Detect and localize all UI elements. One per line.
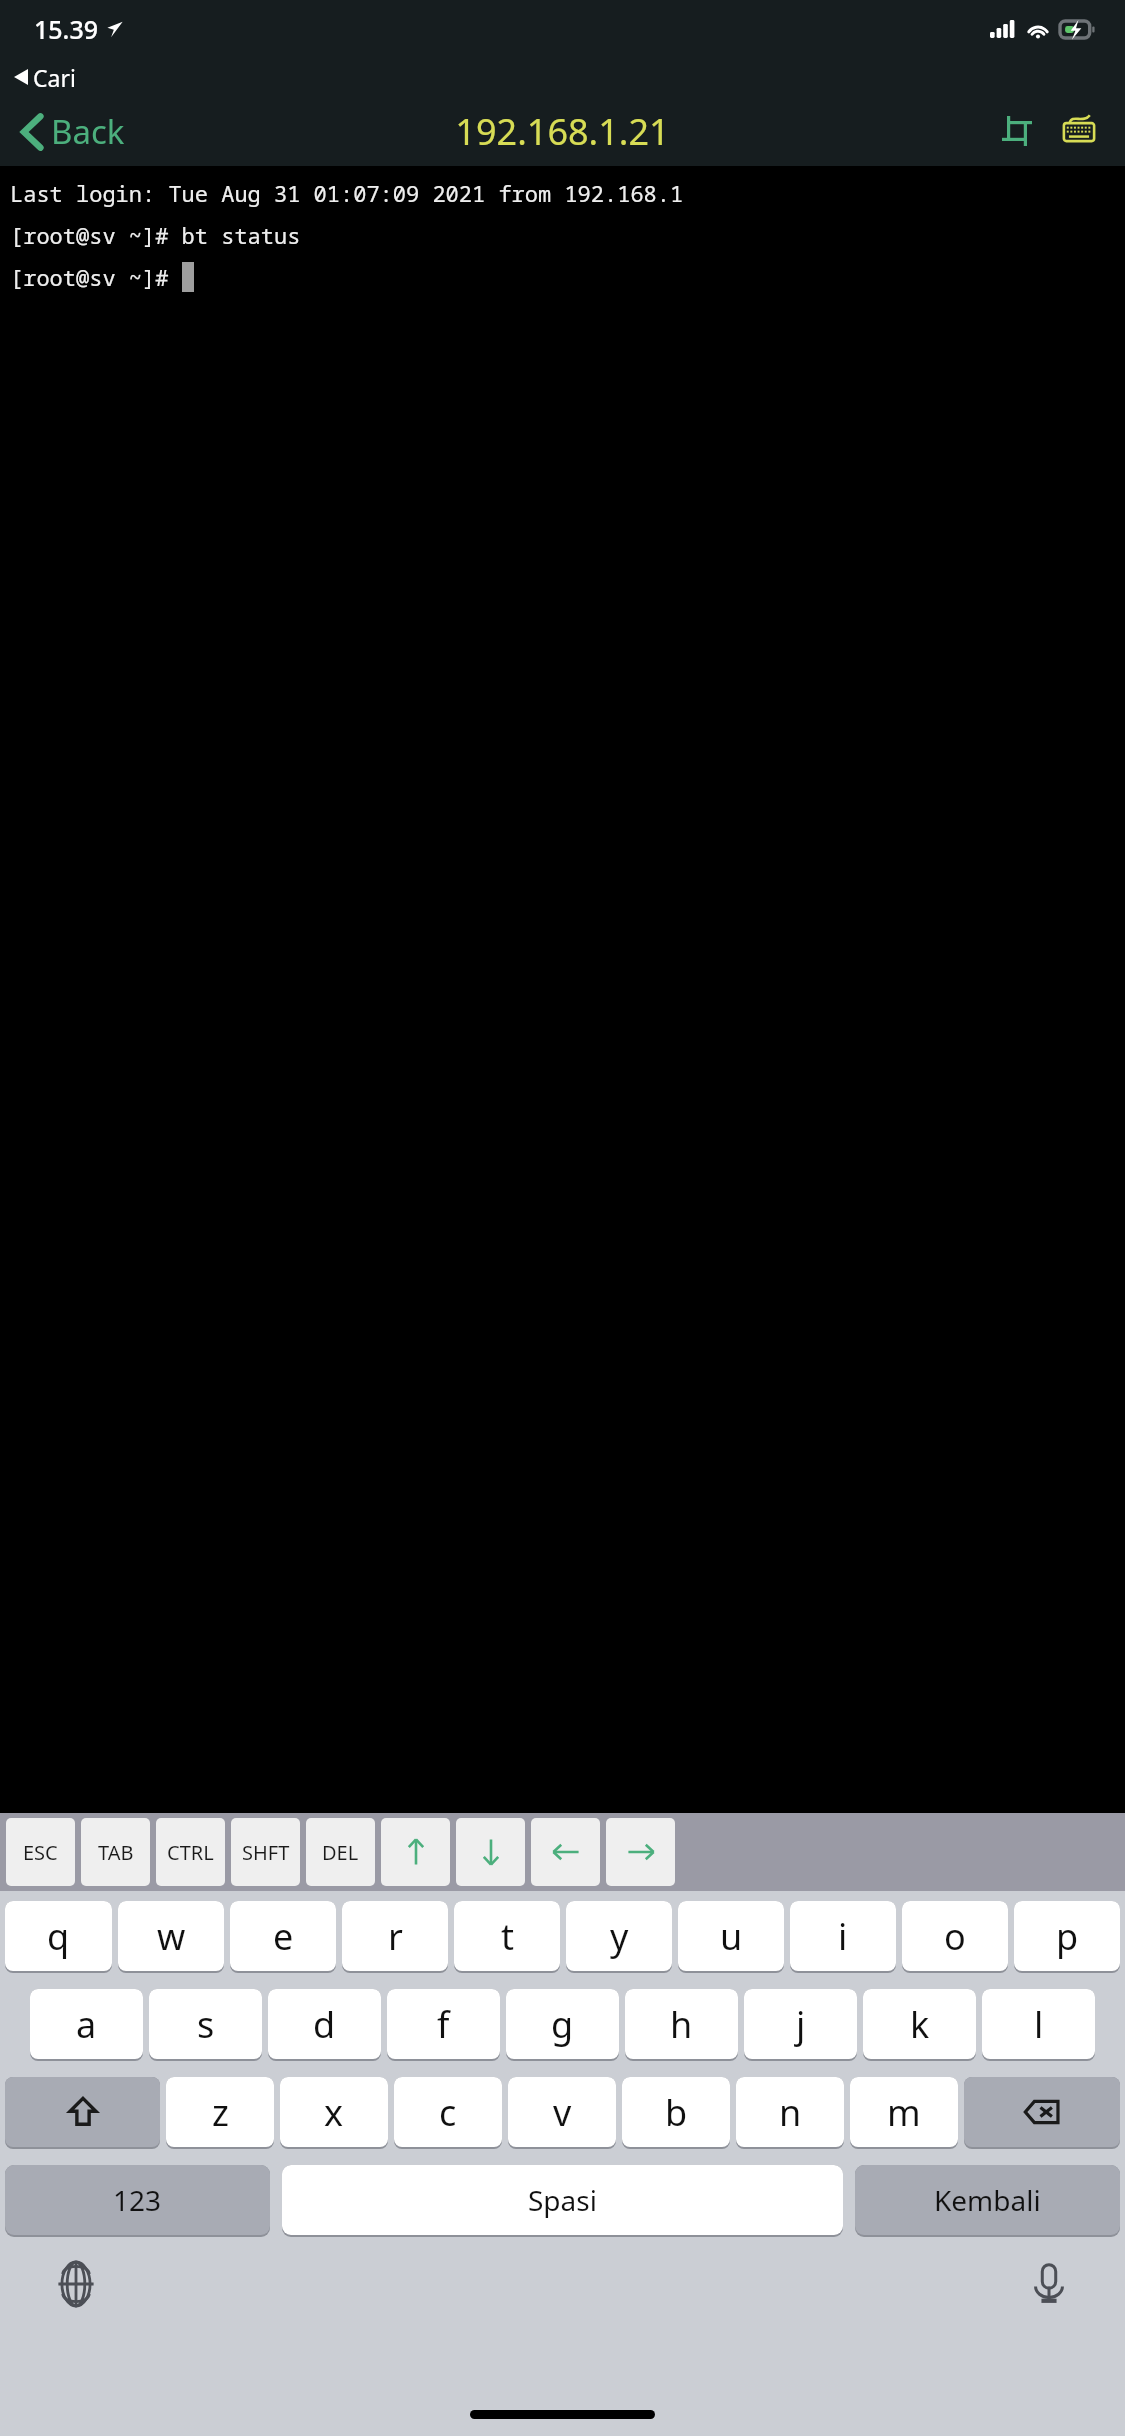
button[interactable]: c (394, 2077, 502, 2147)
button[interactable]: DEL (306, 1818, 375, 1886)
button[interactable]: b (622, 2077, 730, 2147)
button[interactable]: g (506, 1989, 619, 2059)
button[interactable]: Arrow up (381, 1818, 450, 1886)
button[interactable]: Shift (5, 2077, 160, 2147)
staticText: q (47, 1912, 70, 1961)
staticText: ESC (23, 1839, 58, 1866)
button[interactable]: n (736, 2077, 844, 2147)
button[interactable]: f (387, 1989, 500, 2059)
button[interactable]: q (5, 1901, 112, 1971)
staticText: DEL (322, 1839, 359, 1866)
staticText: TAB (98, 1839, 134, 1866)
button[interactable]: t (454, 1901, 560, 1971)
button[interactable]: Arrow left (531, 1818, 600, 1886)
staticText: Back (51, 109, 125, 154)
button[interactable]: a (30, 1989, 143, 2059)
button[interactable]: Arrow down (456, 1818, 525, 1886)
staticText: n (779, 2088, 802, 2137)
staticText: Cari (33, 62, 76, 93)
button[interactable]: Back (22, 109, 125, 154)
button[interactable]: x (280, 2077, 388, 2147)
staticText: g (551, 2000, 574, 2049)
button[interactable]: r (342, 1901, 448, 1971)
button[interactable]: Kembali (855, 2165, 1120, 2235)
staticText: i (838, 1912, 848, 1961)
button[interactable]: TAB (81, 1818, 150, 1886)
staticText: t (501, 1912, 514, 1961)
button[interactable]: Keyboard (1055, 107, 1103, 155)
staticText: d (313, 2000, 336, 2049)
staticText: b (665, 2088, 688, 2137)
staticText: a (76, 2000, 97, 2049)
staticText: x (324, 2088, 344, 2137)
button[interactable]: SHFT (231, 1818, 300, 1886)
button[interactable]: p (1014, 1901, 1120, 1971)
button[interactable]: k (863, 1989, 976, 2059)
button[interactable]: CTRL (156, 1818, 225, 1886)
button[interactable]: h (625, 1989, 738, 2059)
staticText: 15.39 (34, 12, 99, 46)
button[interactable]: Change keyboard language (48, 2256, 104, 2312)
staticText: w (157, 1912, 186, 1961)
staticText: 192.168.1.21 (455, 107, 670, 156)
staticText: CTRL (167, 1839, 214, 1866)
button[interactable]: i (790, 1901, 896, 1971)
staticText: y (610, 1912, 629, 1961)
staticText: e (273, 1912, 294, 1961)
staticText: f (437, 2000, 450, 2049)
staticText: v (553, 2088, 572, 2137)
staticText: z (212, 2088, 229, 2137)
button[interactable]: w (118, 1901, 224, 1971)
staticText: [root@sv ~]# bt status (10, 220, 301, 250)
staticText: r (388, 1912, 403, 1961)
staticText: j (796, 2000, 806, 2049)
staticText: Last login: Tue Aug 31 01:07:09 2021 fro… (10, 178, 684, 208)
staticText: p (1056, 1912, 1079, 1961)
staticText: c (439, 2088, 457, 2137)
staticText: 123 (113, 2181, 162, 2219)
button[interactable]: Backspace (964, 2077, 1120, 2147)
staticText: m (887, 2088, 921, 2137)
staticText: SHFT (242, 1839, 290, 1866)
button[interactable]: l (982, 1989, 1095, 2059)
staticText: k (910, 2000, 930, 2049)
button[interactable]: v (508, 2077, 616, 2147)
button[interactable]: Voice input (1021, 2256, 1077, 2312)
button[interactable]: Spasi (282, 2165, 843, 2235)
staticText: Kembali (934, 2181, 1041, 2219)
button[interactable]: o (902, 1901, 1008, 1971)
button[interactable]: e (230, 1901, 336, 1971)
staticText: u (720, 1912, 743, 1961)
staticText: Spasi (528, 2181, 597, 2219)
button[interactable]: u (678, 1901, 784, 1971)
button[interactable]: s (149, 1989, 262, 2059)
button[interactable]: j (744, 1989, 857, 2059)
staticText: o (944, 1912, 966, 1961)
button[interactable]: 123 (5, 2165, 270, 2235)
button[interactable]: y (566, 1901, 672, 1971)
button[interactable]: d (268, 1989, 381, 2059)
button[interactable]: Cari (14, 58, 1125, 96)
staticText: [root@sv ~]# (10, 262, 182, 292)
staticText: l (1034, 2000, 1044, 2049)
staticText: s (197, 2000, 215, 2049)
staticText: h (670, 2000, 693, 2049)
button[interactable]: ESC (6, 1818, 75, 1886)
button[interactable]: Arrow right (606, 1818, 675, 1886)
button[interactable]: m (850, 2077, 958, 2147)
button[interactable]: Crop (993, 107, 1041, 155)
button[interactable]: z (166, 2077, 274, 2147)
